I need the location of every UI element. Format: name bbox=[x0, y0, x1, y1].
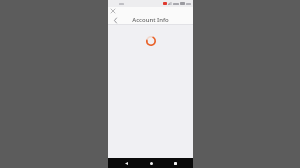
button[interactable]: Recent apps bbox=[168, 158, 182, 168]
button[interactable]: Home bbox=[144, 158, 158, 168]
staticText: Account Info bbox=[132, 16, 169, 24]
button[interactable]: Close bbox=[110, 8, 116, 14]
button[interactable]: Back bbox=[119, 158, 133, 168]
button[interactable]: Back bbox=[112, 15, 119, 25]
